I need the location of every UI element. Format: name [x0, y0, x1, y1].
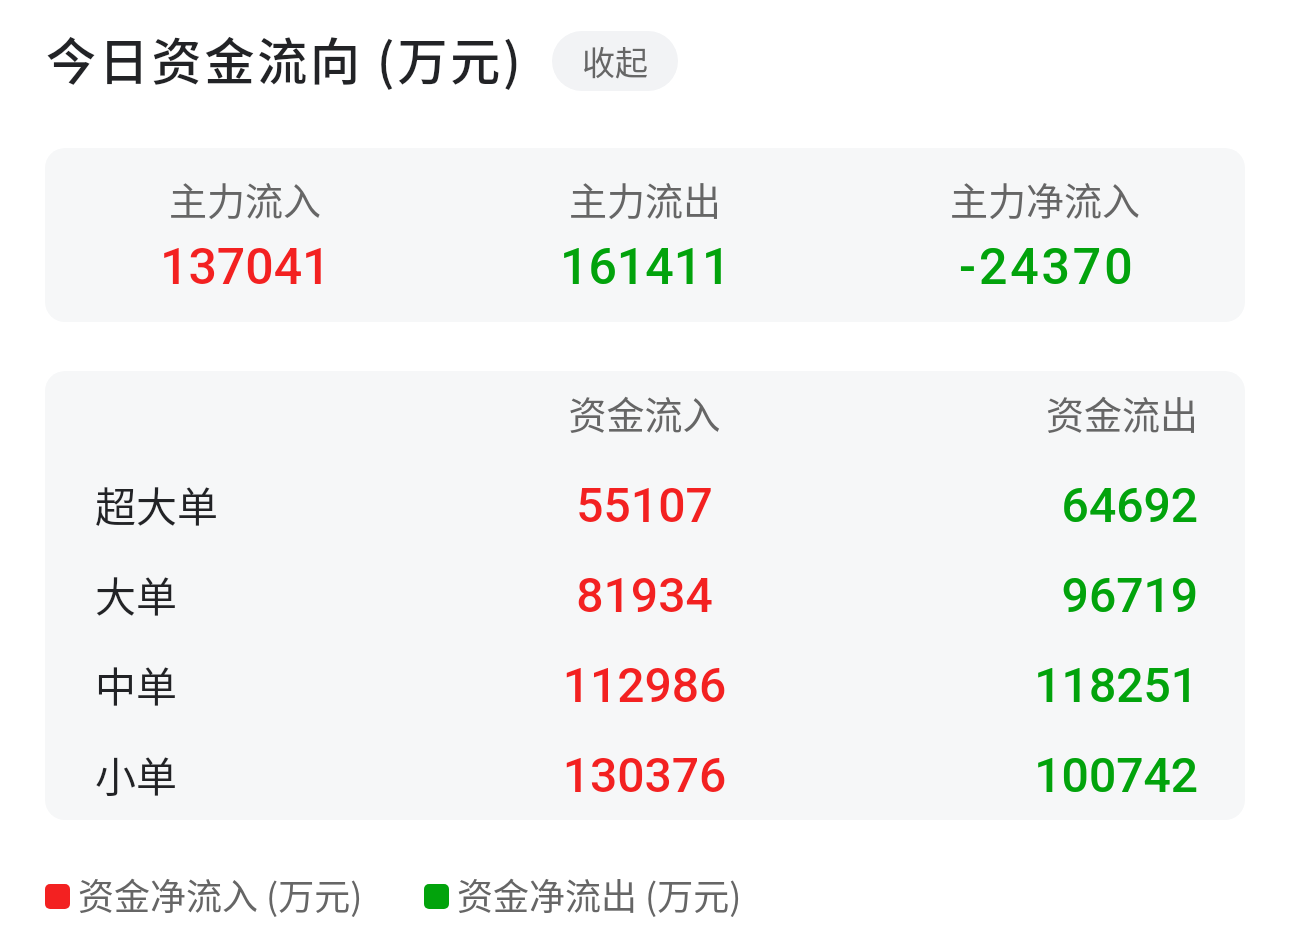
staticText: 主力流出	[569, 171, 722, 226]
staticText: 64692	[831, 477, 1198, 533]
staticText: 超大单	[95, 474, 218, 533]
staticText: 收起	[582, 37, 648, 85]
button[interactable]: 收起	[552, 31, 678, 91]
button[interactable]: 超大单	[95, 460, 1195, 550]
staticText: 资金流出	[831, 385, 1198, 440]
staticText: 55107	[461, 477, 828, 533]
other: series colour marker	[45, 884, 70, 909]
staticText: 今日资金流向 (万元)	[46, 22, 524, 94]
staticText: 100742	[831, 747, 1198, 803]
staticText: 资金流入	[461, 385, 828, 440]
staticText: 96719	[831, 567, 1198, 623]
staticText: -24370	[959, 238, 1136, 297]
button[interactable]: 大单	[95, 550, 1195, 640]
staticText: 137041	[160, 238, 331, 297]
button[interactable]: 主力净流入	[845, 171, 1245, 299]
staticText: 118251	[831, 657, 1198, 713]
staticText: 130376	[461, 747, 828, 803]
button[interactable]: series colour marker	[45, 870, 363, 922]
staticText: 161411	[560, 238, 731, 297]
button[interactable]: 资金流入	[95, 371, 1195, 460]
button[interactable]: 主力流出	[445, 171, 845, 299]
other: series colour marker	[424, 884, 449, 909]
staticText: 资金净流出 (万元)	[457, 868, 742, 920]
staticText: 112986	[461, 657, 828, 713]
button[interactable]: 主力流入	[45, 171, 445, 299]
button[interactable]: series colour marker	[424, 870, 742, 922]
staticText: 小单	[95, 744, 177, 803]
staticText: 主力净流入	[950, 171, 1141, 226]
button[interactable]: 小单	[95, 730, 1195, 820]
button[interactable]: 中单	[95, 640, 1195, 730]
staticText: 中单	[95, 654, 177, 713]
staticText: 主力流入	[169, 171, 322, 226]
staticText: 大单	[95, 564, 177, 623]
staticText: 81934	[461, 567, 828, 623]
staticText: 资金净流入 (万元)	[78, 868, 363, 920]
